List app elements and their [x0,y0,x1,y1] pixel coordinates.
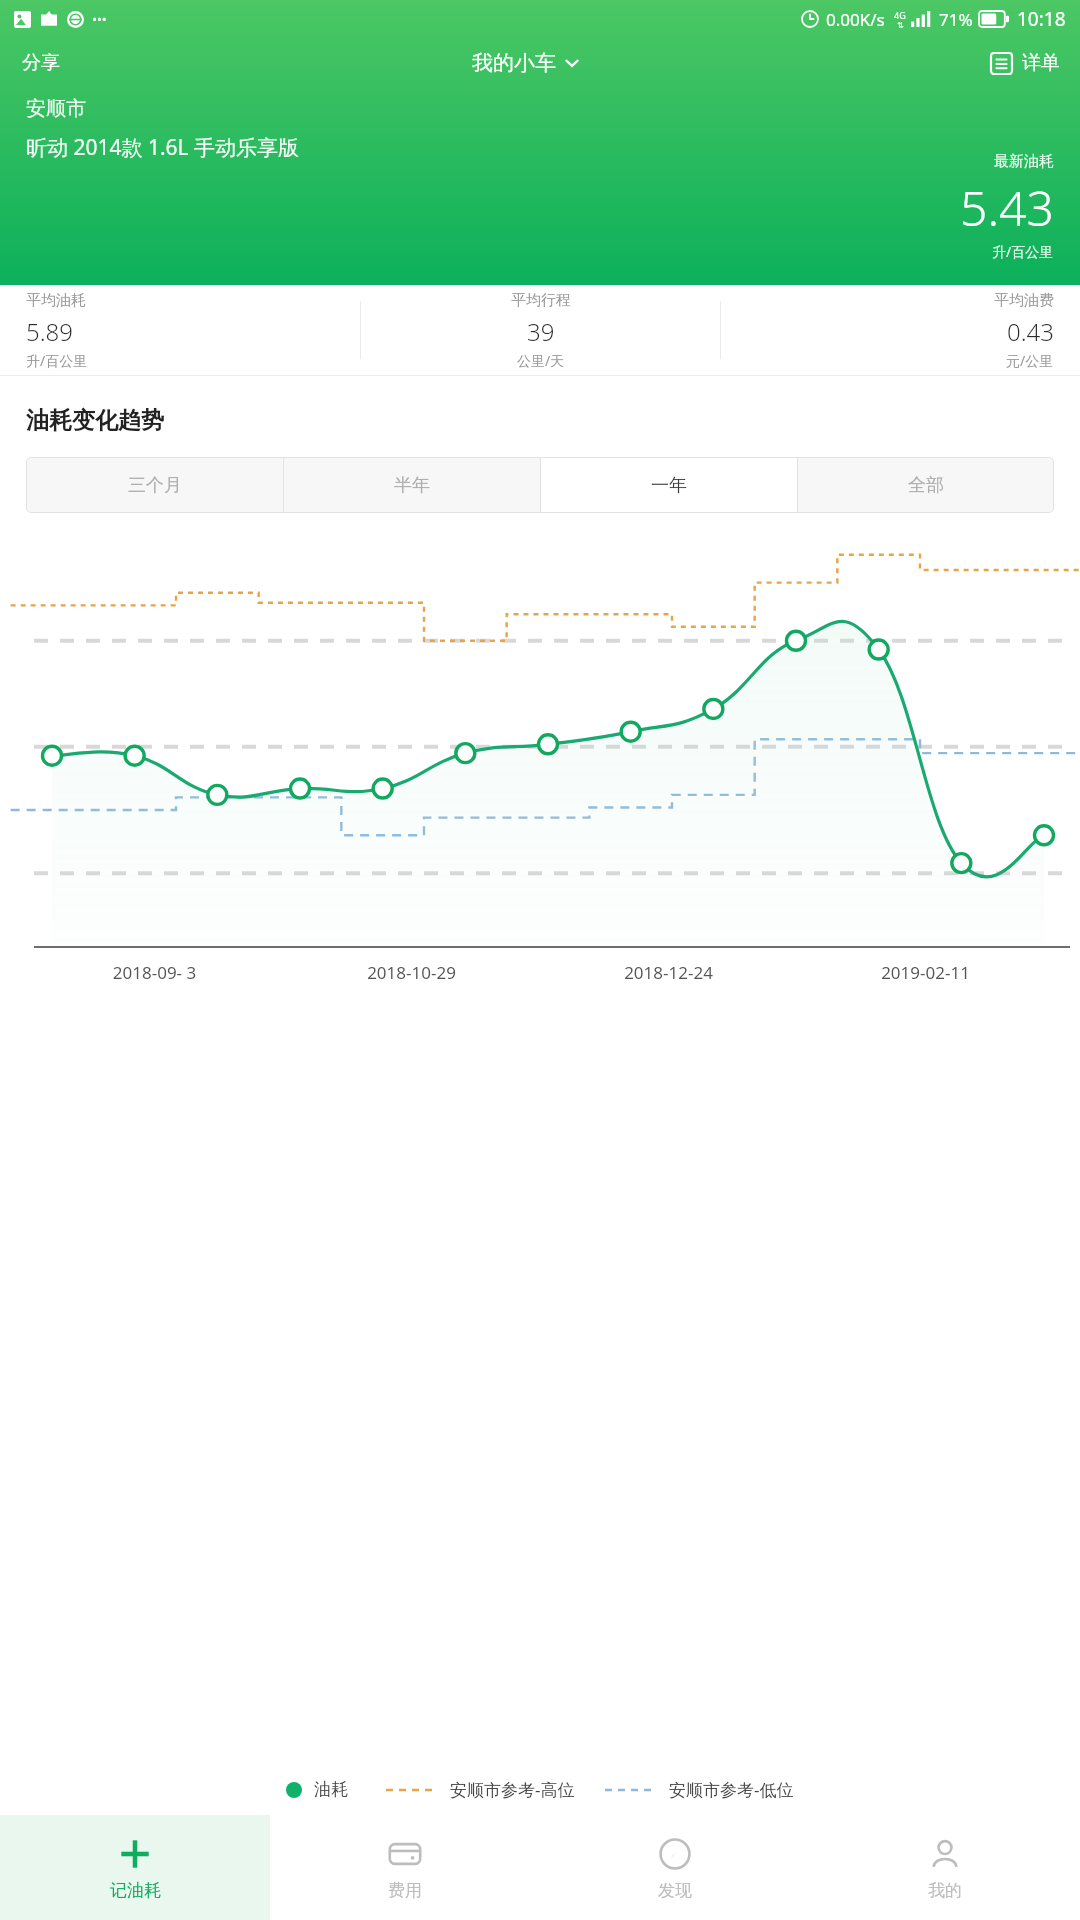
button[interactable]: 平均行程 [361,291,720,370]
staticText: 费用 [388,1880,422,1901]
staticText: 分享 [22,51,60,75]
staticText: 我的小车 [472,50,556,76]
staticText: 0.00K/s [826,8,885,31]
staticText: 安顺市参考-高位 [450,1778,575,1801]
button[interactable]: 三个月 [26,457,283,513]
staticText: 一年 [651,474,687,497]
staticText: 平均行程 [511,291,571,310]
button[interactable]: 一年 [541,457,797,513]
button[interactable]: 记油耗 [0,1815,270,1920]
staticText: 元/公里 [1006,351,1054,370]
staticText: 4G [894,9,906,21]
button[interactable]: 平均油费 [721,291,1080,370]
button[interactable]: 费用 [270,1815,540,1920]
staticText: 5.89 [26,315,73,348]
button[interactable]: 我的 [810,1815,1080,1920]
staticText: 发现 [658,1880,692,1901]
staticText: 升/百公里 [992,242,1054,261]
staticText: 0.43 [1007,315,1054,348]
staticText: 油耗变化趋势 [26,406,164,435]
staticText: 最新油耗 [994,152,1054,171]
staticText: 2019-02-11 [797,961,1054,984]
button[interactable]: 我的小车 [464,44,588,82]
button[interactable]: 发现 [540,1815,810,1920]
staticText: 全部 [908,474,944,497]
staticText: 平均油耗 [26,291,86,310]
staticText: 昕动 2014款 1.6L 手动乐享版 [26,133,300,162]
other: 详单 [990,52,1013,75]
staticText: 39 [527,315,555,348]
staticText: 安顺市 [26,96,86,121]
staticText: 油耗 [314,1779,348,1800]
staticText: 5.43 [960,175,1054,240]
staticText: 详单 [1022,51,1060,75]
staticText: 我的 [928,1880,962,1901]
staticText: 71% [939,8,973,31]
staticText: 2018-12-24 [540,961,797,984]
button[interactable]: 分享 [0,43,82,83]
staticText: 2018-09- 3 [26,961,283,984]
staticText: 10:18 [1017,6,1066,32]
button[interactable]: 平均油耗 [0,291,360,370]
staticText: 2018-10-29 [283,961,540,984]
staticText: 公里/天 [517,351,565,370]
staticText: 半年 [394,474,430,497]
staticText: 平均油费 [994,291,1054,310]
staticText: 记油耗 [110,1880,161,1901]
button[interactable]: 半年 [284,457,540,513]
staticText: 升/百公里 [26,351,88,370]
staticText: ⇅ [897,21,904,30]
button[interactable]: 详单 [970,45,1080,81]
staticText: 三个月 [128,474,182,497]
staticText: ••• [92,10,107,28]
staticText: 安顺市参考-低位 [669,1778,794,1801]
button[interactable]: 全部 [798,457,1054,513]
